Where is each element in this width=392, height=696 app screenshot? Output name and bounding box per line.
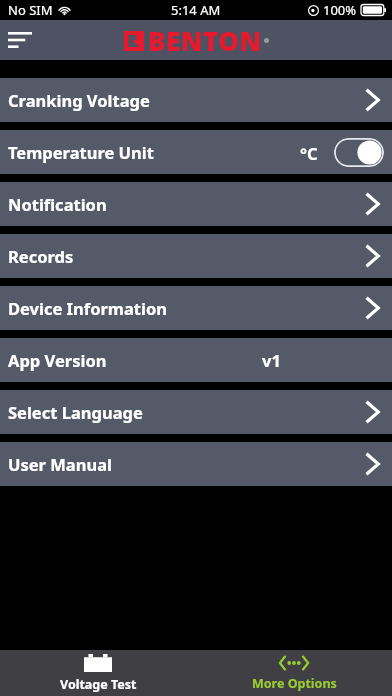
button[interactable]: Cranking Voltage <box>0 78 392 122</box>
button[interactable]: App Version <box>0 338 392 382</box>
staticText: User Manual <box>8 453 112 475</box>
button[interactable]: Records <box>0 234 392 278</box>
staticText: 100% <box>323 1 357 19</box>
staticText: Cranking Voltage <box>8 89 150 111</box>
button[interactable]: Temperature unit toggle <box>334 138 384 167</box>
staticText: Voltage Test <box>60 676 137 693</box>
staticText: v1 <box>262 349 281 371</box>
button[interactable]: Notification <box>0 182 392 226</box>
staticText: °C <box>300 142 318 164</box>
button[interactable]: More Options <box>196 650 392 696</box>
staticText: Select Language <box>8 401 143 423</box>
staticText: Notification <box>8 193 107 215</box>
staticText: More Options <box>252 675 337 692</box>
button[interactable]: Voltage Test <box>0 650 196 696</box>
staticText: BENTON <box>148 23 262 58</box>
button[interactable]: Select Language <box>0 390 392 434</box>
staticText: Records <box>8 245 74 267</box>
button[interactable]: Temperature Unit <box>0 130 392 174</box>
staticText: 5:14 AM <box>171 1 221 19</box>
button[interactable]: Menu <box>0 20 40 60</box>
staticText: No SIM <box>8 1 53 19</box>
staticText: Temperature Unit <box>8 141 154 163</box>
button[interactable]: Device Information <box>0 286 392 330</box>
button[interactable]: User Manual <box>0 442 392 486</box>
staticText: App Version <box>8 349 107 371</box>
staticText: Device Information <box>8 297 167 319</box>
